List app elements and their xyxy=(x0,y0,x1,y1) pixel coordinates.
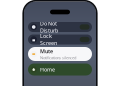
staticText: Notifications silenced xyxy=(40,55,76,60)
button[interactable]: Home xyxy=(28,63,92,75)
staticText: Lock Screen xyxy=(40,32,57,47)
button[interactable]: Do Not Disturb xyxy=(28,22,92,32)
staticText: Home xyxy=(40,66,55,73)
button[interactable]: Lock Screen xyxy=(28,34,92,44)
button[interactable]: Mute xyxy=(28,47,92,61)
staticText: Mute xyxy=(40,48,53,55)
staticText: Do Not Disturb xyxy=(40,20,58,34)
